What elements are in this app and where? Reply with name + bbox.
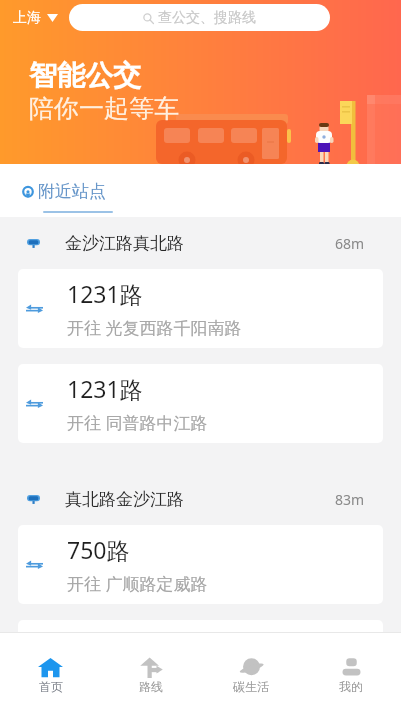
- button[interactable]: 真北路金沙江路: [0, 473, 401, 525]
- button[interactable]: [18, 620, 383, 699]
- button[interactable]: 路线: [101, 633, 201, 710]
- staticText: 开往 光复西路千阳南路: [67, 316, 242, 339]
- staticText: 金沙江路真北路: [65, 233, 184, 254]
- staticText: 1231路: [67, 278, 143, 309]
- staticText: 首页: [39, 679, 63, 694]
- staticText: 碳生活: [233, 679, 269, 694]
- staticText: 1231路: [67, 373, 143, 404]
- button[interactable]: 附近站点: [22, 181, 113, 213]
- staticText: 真北路金沙江路: [65, 489, 184, 510]
- staticText: 路线: [139, 679, 163, 694]
- staticText: 开往 同普路中江路: [67, 411, 208, 434]
- button[interactable]: 1231路: [18, 269, 383, 348]
- staticText: 查公交、搜路线: [158, 9, 256, 27]
- button[interactable]: 750路: [18, 525, 383, 604]
- button[interactable]: 1231路: [18, 364, 383, 443]
- staticText: 68m: [335, 234, 365, 253]
- staticText: 750路: [67, 534, 130, 565]
- staticText: 我的: [339, 679, 363, 694]
- staticText: 陪你一起等车: [29, 93, 179, 124]
- button[interactable]: 查公交、搜路线: [69, 4, 330, 31]
- button[interactable]: 我的: [301, 633, 401, 710]
- staticText: 83m: [335, 490, 365, 509]
- button[interactable]: 首页: [0, 633, 101, 710]
- button[interactable]: 碳生活: [201, 633, 301, 710]
- staticText: 附近站点: [38, 181, 106, 202]
- button[interactable]: 金沙江路真北路: [0, 217, 401, 269]
- staticText: 智能公交: [29, 58, 141, 93]
- staticText: 上海: [13, 9, 41, 27]
- staticText: 开往 广顺路定威路: [67, 572, 208, 595]
- button[interactable]: 上海: [9, 4, 62, 32]
